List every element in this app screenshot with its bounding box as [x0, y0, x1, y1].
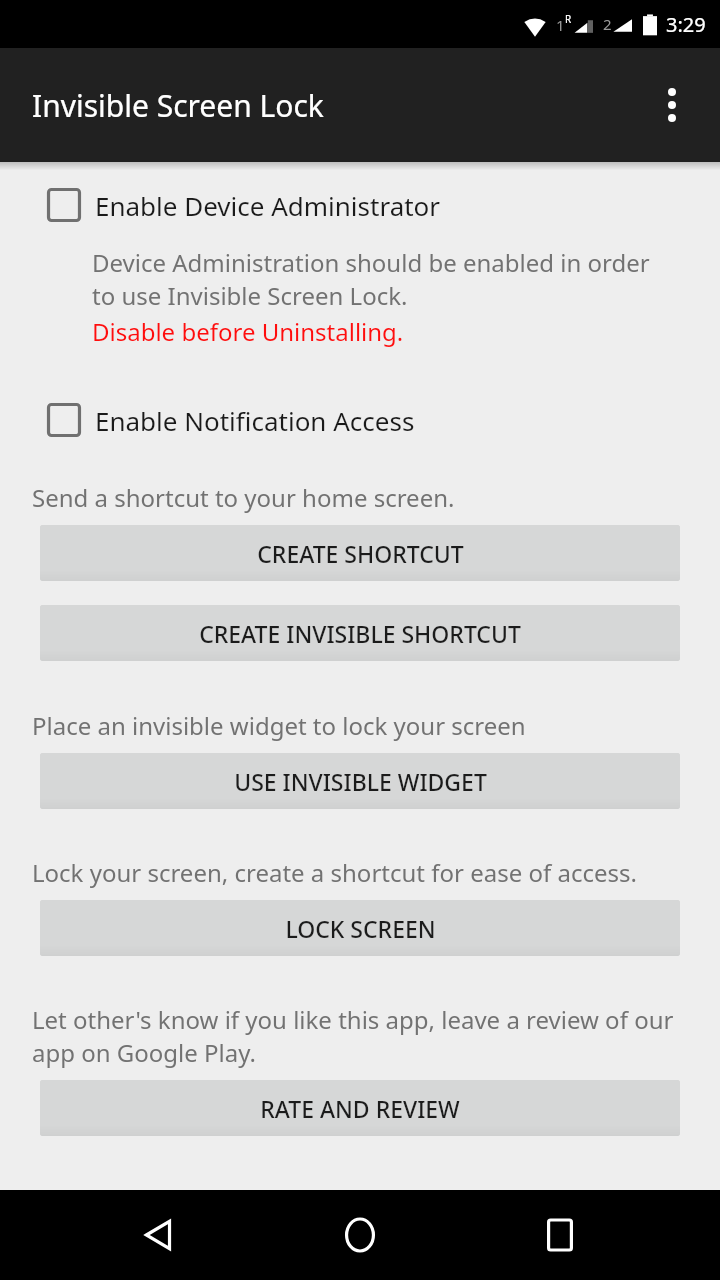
staticText: Send a shortcut to your home screen. [32, 481, 455, 514]
button[interactable]: RATE AND REVIEW [40, 1080, 680, 1136]
staticText: LOCK SCREEN [285, 913, 436, 944]
staticText: Let other's know if you like this app, l… [32, 1003, 690, 1069]
staticText: CREATE SHORTCUT [257, 538, 464, 569]
staticText: CREATE INVISIBLE SHORTCUT [199, 618, 521, 649]
staticText: Enable Notification Access [95, 403, 415, 438]
staticText: Invisible Screen Lock [32, 85, 324, 126]
staticText: 3:29 [666, 11, 706, 38]
staticText: Lock your screen, create a shortcut for … [32, 856, 637, 889]
button[interactable]: CREATE INVISIBLE SHORTCUT [40, 605, 680, 661]
staticText: Place an invisible widget to lock your s… [32, 709, 526, 742]
button[interactable]: Recents [520, 1195, 600, 1275]
button[interactable]: Back [120, 1195, 200, 1275]
staticText: R [565, 12, 572, 26]
staticText: USE INVISIBLE WIDGET [234, 766, 487, 797]
button[interactable]: LOCK SCREEN [40, 900, 680, 956]
button[interactable]: Home [320, 1195, 400, 1275]
staticText: 2 [603, 14, 612, 34]
staticText: Disable before Uninstalling. [92, 315, 404, 348]
staticText: RATE AND REVIEW [260, 1093, 460, 1124]
staticText: Enable Device Administrator [95, 188, 441, 223]
button[interactable]: More options [648, 81, 696, 129]
staticText: Device Administration should be enabled … [92, 246, 660, 312]
button[interactable]: Enable Notification Access [0, 398, 720, 442]
button[interactable]: USE INVISIBLE WIDGET [40, 753, 680, 809]
staticText: 1 [556, 15, 565, 35]
button[interactable]: CREATE SHORTCUT [40, 525, 680, 581]
button[interactable]: Enable Device Administrator [0, 183, 720, 227]
